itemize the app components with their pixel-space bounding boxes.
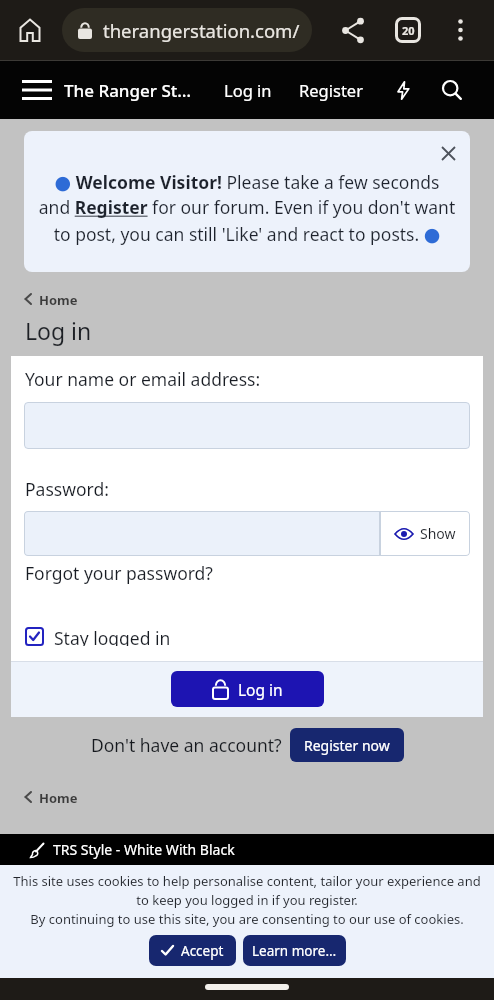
staticText: Register now	[304, 736, 390, 755]
staticText: 20	[402, 23, 415, 38]
button[interactable]: Register	[299, 79, 363, 101]
button[interactable]: Show	[380, 511, 470, 556]
button[interactable]: Log in	[171, 671, 324, 707]
staticText: TRS Style - White With Black	[53, 840, 235, 859]
button[interactable]	[440, 78, 464, 102]
button[interactable]: The Ranger St…	[64, 79, 192, 102]
button[interactable]	[337, 14, 369, 46]
button[interactable]: Learn more…	[243, 935, 346, 966]
staticText: Home	[39, 789, 78, 805]
button[interactable]: Home	[24, 789, 78, 805]
staticText: therangerstation.com/	[103, 18, 300, 43]
button[interactable]: Register now	[290, 728, 404, 762]
button[interactable]: 20	[395, 17, 421, 43]
staticText: This site uses cookies to help personali…	[0, 872, 494, 928]
staticText: Home	[39, 291, 78, 307]
staticText: Accept	[181, 942, 224, 960]
button[interactable]: Stay logged in	[25, 626, 171, 646]
button[interactable]	[20, 73, 54, 107]
button[interactable]	[448, 18, 472, 42]
button[interactable]: Log in	[224, 79, 272, 101]
staticText: ● Welcome Visitor! Please take a few sec…	[24, 170, 470, 246]
button[interactable]: Home	[24, 291, 78, 307]
staticText: Don't have an account?	[91, 733, 282, 757]
button[interactable]	[392, 79, 414, 101]
button[interactable]: Accept	[149, 935, 236, 966]
staticText: Log in	[238, 679, 283, 700]
button[interactable]	[13, 13, 47, 47]
button[interactable]: therangerstation.com/	[62, 8, 312, 52]
staticText: Stay logged in	[54, 626, 171, 646]
staticText: Log in	[224, 79, 272, 101]
staticText: Log in	[25, 315, 92, 346]
button[interactable]	[24, 511, 380, 556]
staticText: Forgot your password?	[25, 561, 213, 585]
staticText: Your name or email address:	[25, 367, 261, 391]
staticText: Show	[420, 524, 456, 543]
button[interactable]: Forgot your password?	[25, 561, 213, 585]
button[interactable]	[436, 141, 460, 165]
staticText: Register	[299, 79, 363, 101]
staticText: Learn more…	[252, 942, 337, 960]
button[interactable]	[24, 402, 470, 449]
staticText: The Ranger St…	[64, 79, 192, 102]
staticText: Password:	[25, 477, 109, 501]
button[interactable]: TRS Style - White With Black	[0, 834, 494, 865]
